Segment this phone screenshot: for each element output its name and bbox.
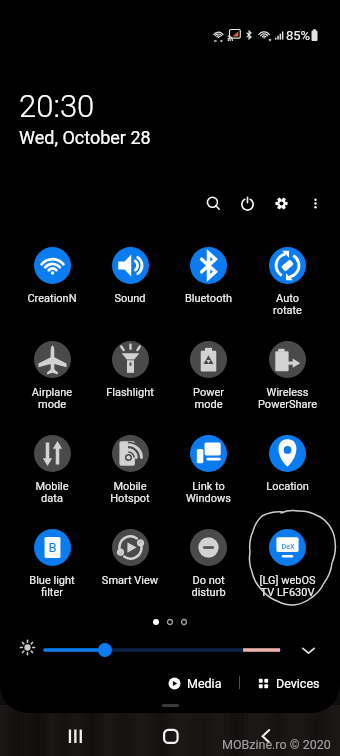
staticText: Airplane mode [13,386,91,411]
button[interactable]: Do not disturb [169,529,248,599]
staticText: Mobile Hotspot [91,480,169,505]
staticText: Blue light filter [13,574,91,599]
button[interactable]: Brightness [18,638,37,657]
button[interactable]: Airplane mode [13,341,91,411]
button[interactable]: Media [163,673,227,694]
button[interactable]: Settings [268,190,294,216]
staticText: Do not disturb [169,574,248,599]
staticText: DeX [281,542,295,550]
button[interactable]: Devices [252,673,325,694]
staticText: Mobile data [13,480,91,505]
staticText: 20:30 [19,88,95,124]
staticText: Auto rotate [248,292,327,317]
button[interactable]: Wireless PowerShare [248,341,327,411]
staticText: 85% [286,28,311,43]
staticText: Wireless PowerShare [248,386,327,411]
button[interactable]: Flashlight [91,341,169,399]
button[interactable]: Mobile Hotspot [91,435,169,505]
staticText: Location [248,480,327,493]
button[interactable]: Bluetooth [169,247,248,305]
staticText: CreationN [13,292,91,305]
button[interactable]: Sound [91,247,169,305]
staticText: B [48,540,57,555]
button[interactable]: Power [234,190,260,216]
button[interactable]: CreationN [13,247,91,305]
button[interactable]: More options [302,190,328,216]
button[interactable]: Smart View [91,529,169,587]
staticText: Devices [276,676,320,691]
button[interactable]: Auto rotate [248,247,327,317]
button[interactable]: Recent apps [55,716,95,756]
staticText: Link to Windows [169,480,248,505]
button[interactable]: Mobile data [13,435,91,505]
staticText: Smart View [91,574,169,587]
button[interactable]: Home [151,716,191,756]
staticText: Power mode [169,386,248,411]
button[interactable]: Location [248,435,327,493]
button[interactable]: Brightness slider [42,640,283,660]
button[interactable]: Expand [297,639,319,661]
staticText: Sound [91,292,169,305]
button[interactable]: Back [246,716,286,756]
staticText: Media [187,676,222,691]
staticText: Wed, October 28 [19,127,151,148]
staticText: Flashlight [91,386,169,399]
button[interactable]: Search [200,190,226,216]
button[interactable]: Link to Windows [169,435,248,505]
staticText: [LG] webOS TV LF630V [248,574,327,599]
button[interactable]: DeX [248,529,327,599]
staticText: Bluetooth [169,292,248,305]
button[interactable]: B [13,529,91,599]
staticText: MOBzine.ro © 2020 [222,737,331,752]
button[interactable]: Power mode [169,341,248,411]
